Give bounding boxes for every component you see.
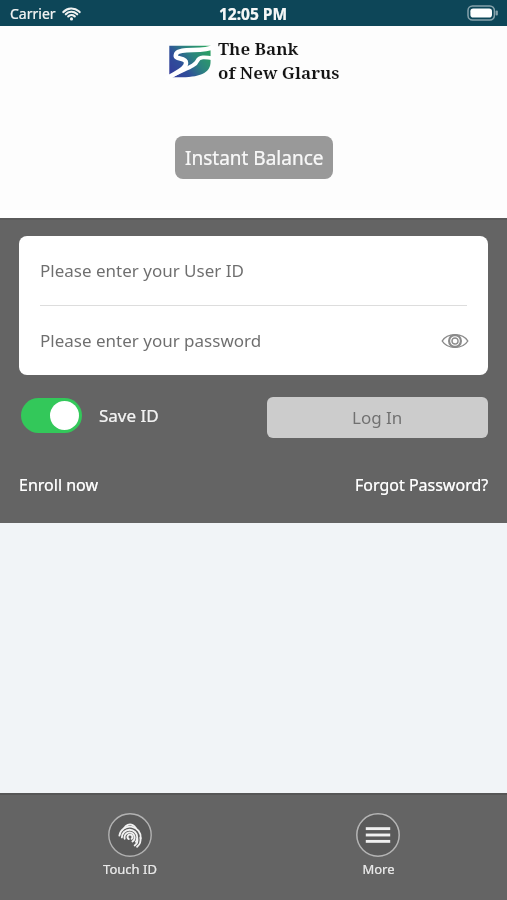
button[interactable]: Log In bbox=[267, 397, 488, 438]
staticText: Touch ID bbox=[103, 860, 157, 878]
button[interactable]: Show password bbox=[437, 323, 473, 359]
staticText: More bbox=[362, 860, 395, 878]
staticText: 12:05 PM bbox=[219, 3, 288, 24]
button[interactable]: Please enter your password bbox=[19, 306, 488, 375]
button[interactable]: Save ID bbox=[21, 398, 159, 433]
staticText: Save ID bbox=[99, 404, 159, 427]
staticText: The Bank bbox=[218, 37, 299, 60]
button[interactable]: Enroll now bbox=[19, 474, 98, 496]
staticText: Log In bbox=[352, 406, 403, 429]
button[interactable]: More bbox=[328, 813, 428, 878]
staticText: Please enter your User ID bbox=[40, 259, 244, 282]
staticText: of New Glarus bbox=[218, 61, 340, 84]
button[interactable]: Please enter your User ID bbox=[19, 236, 488, 305]
staticText: Carrier bbox=[10, 4, 56, 23]
staticText: Enroll now bbox=[19, 474, 98, 496]
staticText: Please enter your password bbox=[40, 329, 262, 352]
button[interactable]: Forgot Password? bbox=[355, 474, 489, 496]
button[interactable]: Touch ID bbox=[80, 813, 180, 878]
staticText: Forgot Password? bbox=[355, 474, 489, 496]
staticText: Instant Balance bbox=[185, 145, 324, 171]
button[interactable]: Instant Balance bbox=[175, 136, 333, 179]
